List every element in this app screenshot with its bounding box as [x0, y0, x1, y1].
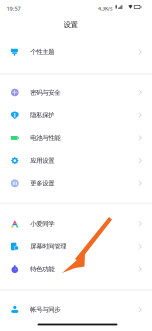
staticText: 隐私保护	[30, 111, 54, 119]
staticText: 4.3K/s	[98, 5, 113, 12]
staticText: 小爱同学	[30, 220, 54, 228]
button[interactable]: 特色功能	[0, 258, 152, 280]
staticText: 应用设置	[30, 157, 54, 165]
staticText: 个性主题	[30, 48, 54, 56]
staticText: 更多设置	[30, 179, 54, 187]
button[interactable]: 隐私保护	[0, 104, 152, 127]
button[interactable]: 应用设置	[0, 149, 152, 172]
staticText: 电池与性能	[30, 134, 60, 142]
staticText: 19:57	[7, 5, 21, 12]
button[interactable]: 电池与性能	[0, 127, 152, 149]
staticText: 帐号与同步	[30, 306, 60, 314]
button[interactable]: 个性主题	[0, 40, 152, 63]
button[interactable]: 小爱同学	[0, 212, 152, 235]
staticText: 设置	[63, 20, 77, 29]
button[interactable]: 帐号与同步	[0, 298, 152, 321]
staticText: 特色功能	[30, 265, 54, 273]
button[interactable]: 更多设置	[0, 172, 152, 195]
button[interactable]: 屏幕时间管理	[0, 235, 152, 258]
staticText: 密码与安全	[30, 88, 60, 97]
button[interactable]: 密码与安全	[0, 81, 152, 104]
staticText: 屏幕时间管理	[30, 242, 66, 250]
